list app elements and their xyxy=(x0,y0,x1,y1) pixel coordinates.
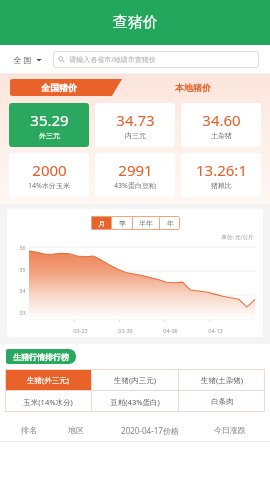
button[interactable]: 35.29 xyxy=(9,103,89,147)
staticText: 04-13 xyxy=(208,327,223,334)
staticText: 2991 xyxy=(118,160,153,180)
button[interactable]: 生猪(内三元) xyxy=(92,369,178,390)
staticText: 35.29 xyxy=(30,110,69,130)
staticText: 13.26:1 xyxy=(196,160,247,180)
button[interactable]: 13.26:1 xyxy=(181,153,261,197)
staticText: 03-23 xyxy=(73,327,88,334)
staticText: 玉米(14%水分) xyxy=(23,397,73,407)
button[interactable]: 请输入各省市/地级市查猪价 xyxy=(53,51,259,68)
button[interactable]: 生猪(土杂猪) xyxy=(179,369,265,390)
button[interactable]: 2000 xyxy=(9,153,89,197)
button[interactable]: 年 xyxy=(160,216,180,230)
staticText: 外三元 xyxy=(39,131,60,140)
staticText: 本地猪价 xyxy=(175,82,211,93)
staticText: 地区 xyxy=(68,425,84,435)
staticText: 34.73 xyxy=(116,110,155,130)
button[interactable]: 月 xyxy=(91,216,111,230)
staticText: 猪粮比 xyxy=(211,181,232,190)
staticText: 单位: 元/公斤 xyxy=(221,233,254,241)
button[interactable]: 2991 xyxy=(95,153,175,197)
button[interactable]: 生猪(外三元) xyxy=(5,369,91,390)
staticText: 请输入各省市/地级市查猪价 xyxy=(69,55,156,65)
staticText: 03-30 xyxy=(118,327,133,334)
staticText: 2000 xyxy=(32,160,67,180)
button[interactable]: 白条肉 xyxy=(179,391,265,412)
staticText: 白条肉 xyxy=(211,397,234,406)
staticText: 排名 xyxy=(21,425,37,435)
button[interactable]: 34.73 xyxy=(95,103,175,147)
staticText: 季 xyxy=(119,219,126,228)
staticText: 34.60 xyxy=(202,110,241,130)
button[interactable]: 本地猪价 xyxy=(122,78,264,97)
staticText: 36 xyxy=(19,244,26,251)
staticText: 全国猪价 xyxy=(41,82,77,93)
staticText: 土杂猪 xyxy=(211,131,232,140)
staticText: 今日涨跌 xyxy=(214,425,246,435)
staticText: 豆粕(43%蛋白) xyxy=(110,397,160,407)
staticText: 35 xyxy=(19,266,26,273)
button[interactable]: 全国猪价 xyxy=(10,79,122,96)
staticText: 生猪(内三元) xyxy=(114,375,156,385)
button[interactable]: 34.60 xyxy=(181,103,261,147)
staticText: 全 国 xyxy=(13,54,32,65)
staticText: 33 xyxy=(19,309,26,316)
button[interactable]: 生猪行情排行榜 xyxy=(6,349,76,364)
staticText: 生猪(土杂猪) xyxy=(201,375,243,385)
button[interactable]: 季 xyxy=(112,216,132,230)
staticText: 月 xyxy=(98,219,105,228)
staticText: 2020-04-17价格 xyxy=(121,425,179,436)
button[interactable]: 半年 xyxy=(133,216,159,230)
staticText: 年 xyxy=(167,219,174,228)
staticText: 34 xyxy=(19,287,26,294)
button[interactable]: 豆粕(43%蛋白) xyxy=(92,391,178,412)
staticText: 14%水分玉米 xyxy=(28,181,70,191)
staticText: 内三元 xyxy=(125,131,146,140)
staticText: 04-06 xyxy=(163,327,178,334)
button[interactable]: 全 国 xyxy=(11,52,44,67)
staticText: 半年 xyxy=(139,219,153,228)
button[interactable]: 玉米(14%水分) xyxy=(5,391,91,412)
staticText: 43%蛋白豆粕 xyxy=(114,181,156,191)
staticText: 生猪行情排行榜 xyxy=(13,352,69,362)
staticText: 查猪价 xyxy=(113,13,158,32)
staticText: 生猪(外三元) xyxy=(27,375,69,385)
